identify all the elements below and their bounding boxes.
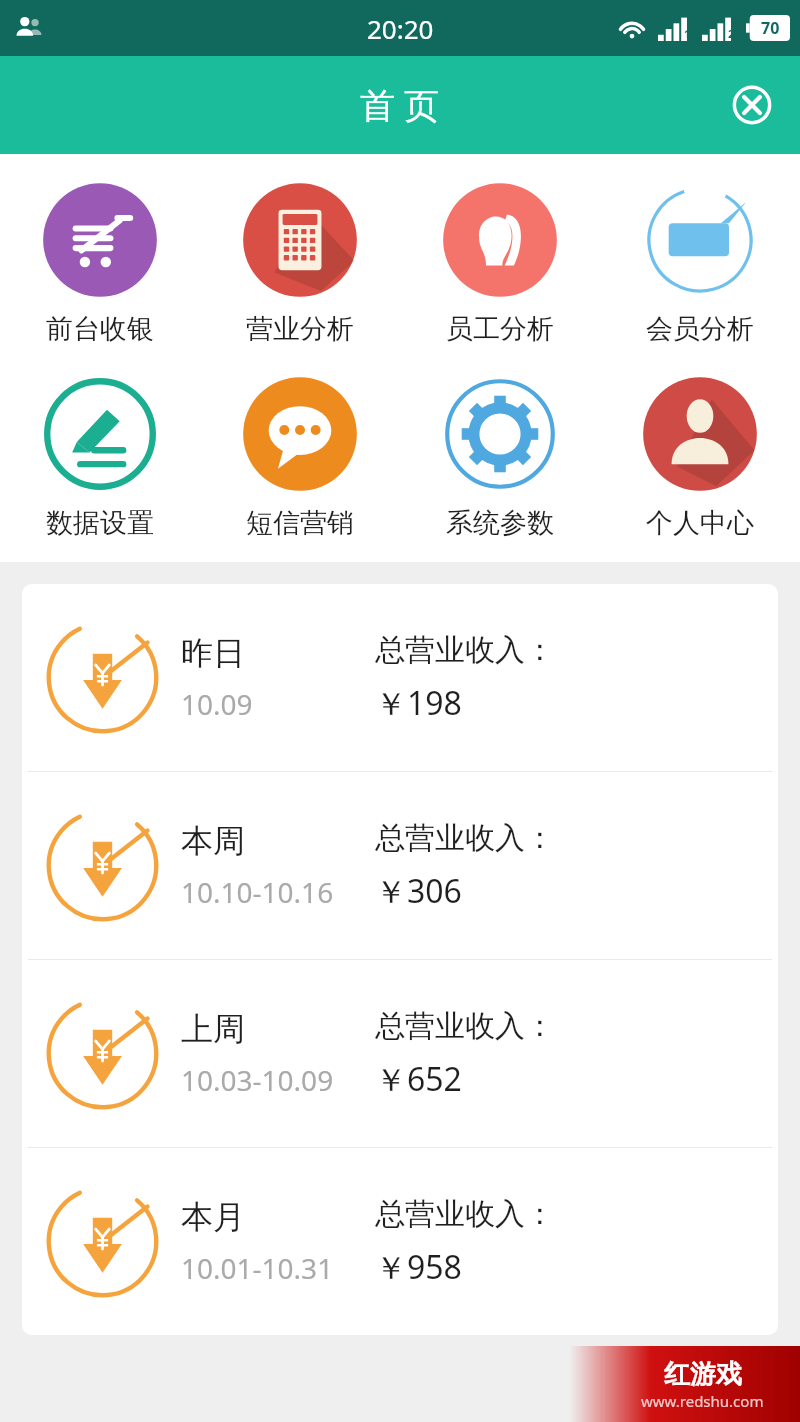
button[interactable]: 员工分析	[400, 178, 600, 350]
staticText: 数据设置	[46, 506, 154, 540]
staticText: 1	[684, 26, 691, 41]
staticText: 员工分析	[446, 312, 554, 346]
staticText: 2	[728, 26, 735, 41]
staticText: 10.03-10.09	[181, 1061, 334, 1099]
staticText: 10.09	[181, 685, 253, 723]
staticText: 上周	[181, 1009, 245, 1049]
staticText: 红游戏	[664, 1358, 742, 1391]
staticText: 短信营销	[246, 506, 354, 540]
staticText: ￥958	[375, 1245, 462, 1289]
staticText: 本周	[181, 821, 245, 861]
button[interactable]: 系统参数	[400, 372, 600, 544]
staticText: 系统参数	[446, 506, 554, 540]
button[interactable]: 会员分析	[600, 178, 800, 350]
button[interactable]: 上周	[22, 960, 778, 1147]
staticText: 首 页	[360, 81, 440, 129]
staticText: 本月	[181, 1197, 245, 1237]
staticText: ￥652	[375, 1057, 462, 1101]
button[interactable]: 短信营销	[200, 372, 400, 544]
button[interactable]: 前台收银	[0, 178, 200, 350]
staticText: 前台收银	[46, 312, 154, 346]
staticText: www.redshu.com	[641, 1391, 764, 1411]
staticText: 昨日	[181, 633, 245, 673]
staticText: 营业分析	[246, 312, 354, 346]
staticText: ￥198	[375, 681, 462, 725]
staticText: 个人中心	[646, 506, 754, 540]
staticText: 10.10-10.16	[181, 873, 334, 911]
staticText: 70	[761, 17, 780, 39]
button[interactable]: 营业分析	[200, 178, 400, 350]
staticText: 总营业收入：	[375, 631, 555, 669]
staticText: 总营业收入：	[375, 1007, 555, 1045]
button[interactable]: 本月	[22, 1148, 778, 1335]
button[interactable]: 本周	[22, 772, 778, 959]
button[interactable]: 数据设置	[0, 372, 200, 544]
staticText: 总营业收入：	[375, 819, 555, 857]
staticText: 10.01-10.31	[181, 1249, 334, 1287]
staticText: 20:20	[367, 11, 434, 46]
button[interactable]: Close	[726, 79, 778, 131]
button[interactable]: 个人中心	[600, 372, 800, 544]
staticText: 会员分析	[646, 312, 754, 346]
staticText: ￥306	[375, 869, 462, 913]
staticText: 总营业收入：	[375, 1195, 555, 1233]
button[interactable]: 昨日	[22, 584, 778, 771]
